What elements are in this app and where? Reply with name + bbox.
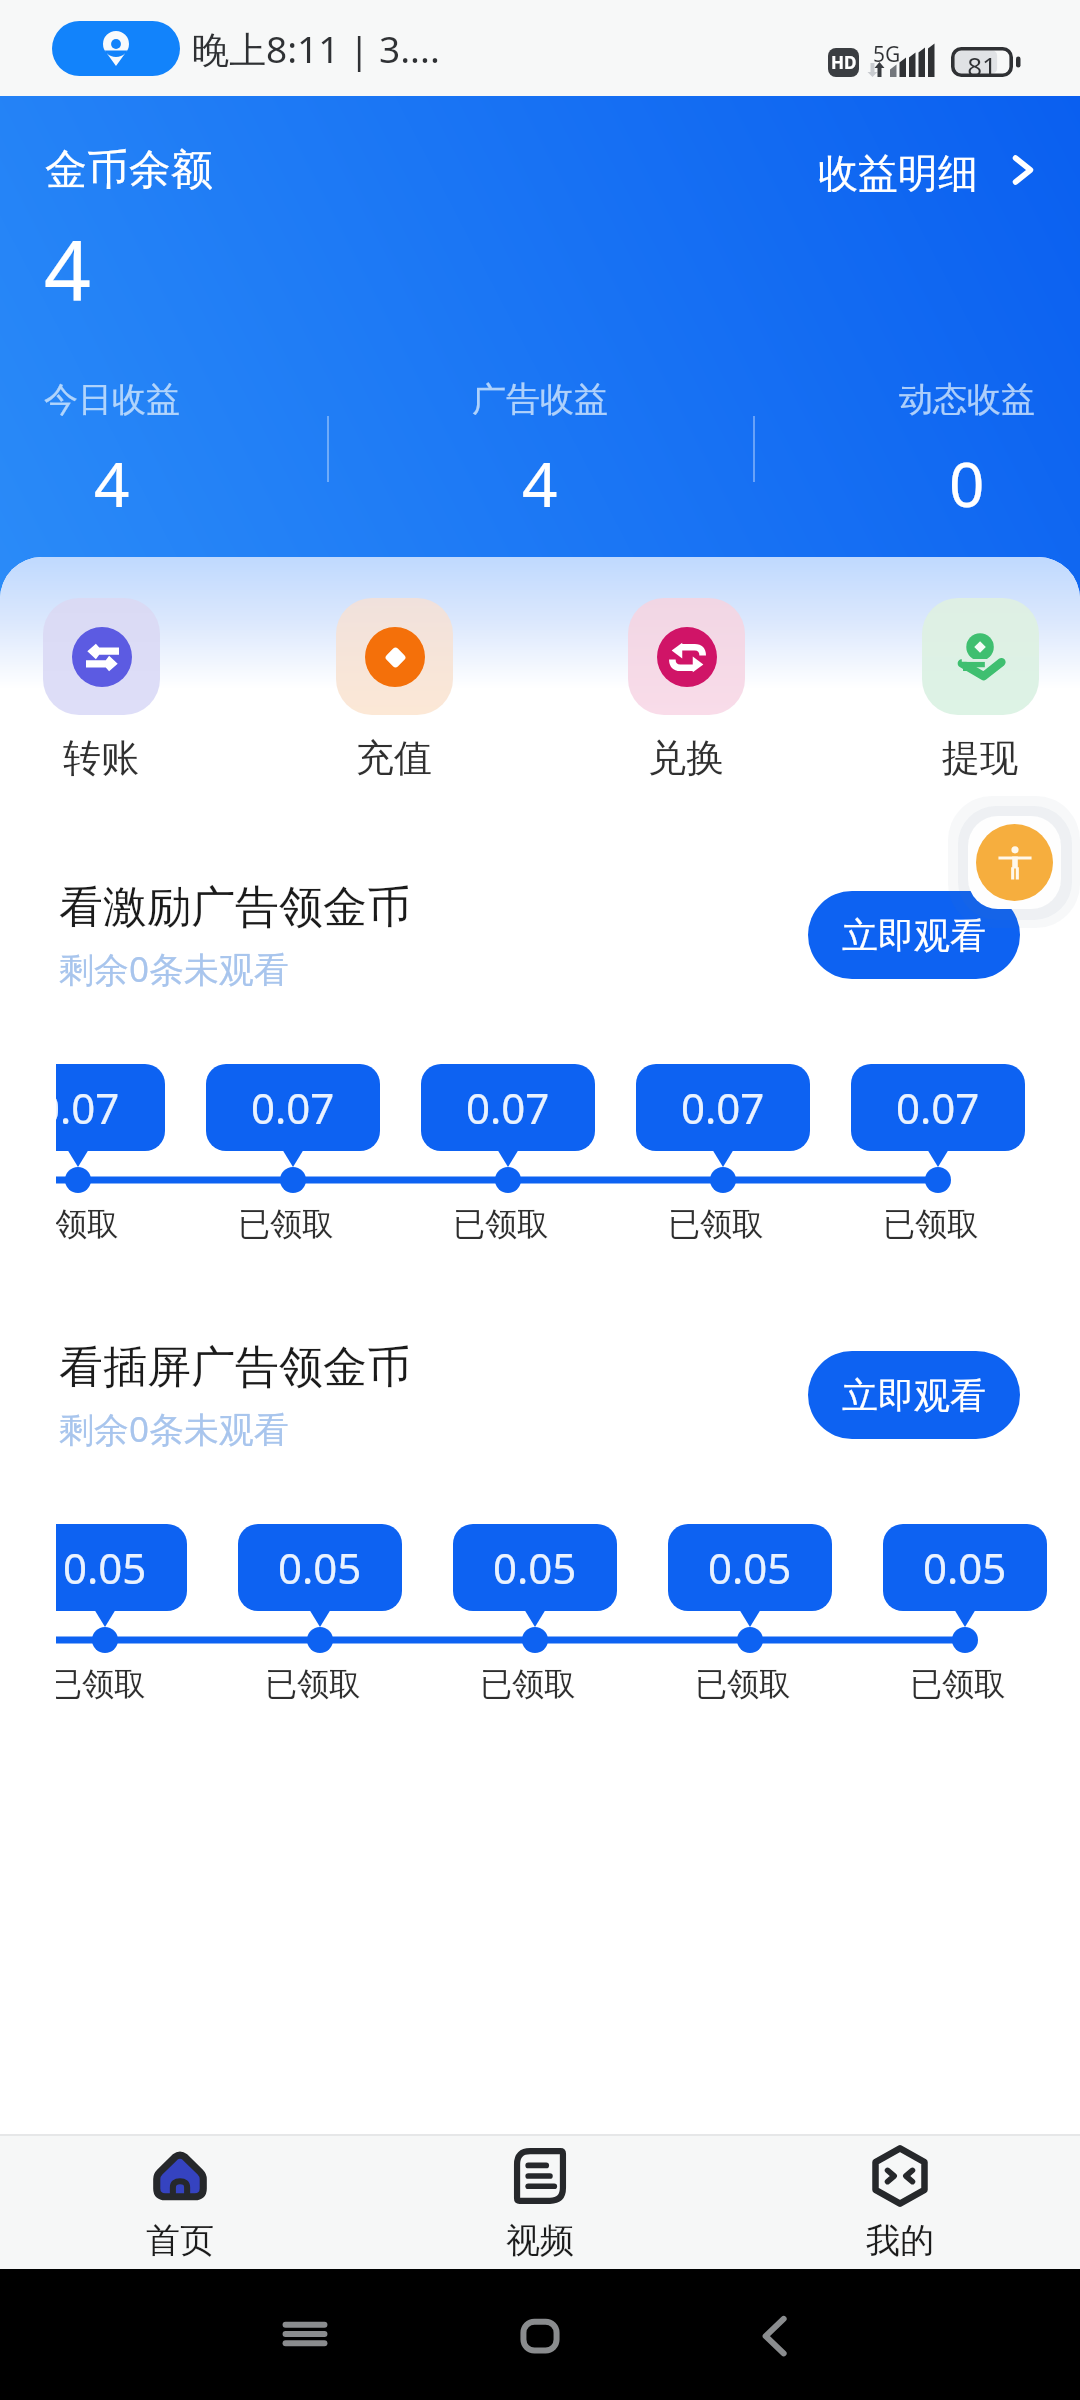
staticText: 4 [94, 441, 130, 525]
staticText: 0.07 [251, 1079, 335, 1136]
staticText: 0.07 [56, 1079, 120, 1136]
button[interactable]: 0.07 [851, 1064, 1025, 1151]
staticText: 已领取 [196, 1204, 376, 1244]
staticText: 0.05 [278, 1539, 362, 1596]
staticText: 4 [522, 441, 558, 525]
staticText: HD [831, 51, 857, 74]
staticText: 立即观看 [842, 913, 986, 958]
staticText: 动态收益 [899, 378, 1035, 421]
staticText: 看插屏广告领金币 [59, 1340, 411, 1395]
staticText: 金币余额 [45, 144, 213, 197]
staticText: 看激励广告领金币 [59, 880, 411, 935]
staticText: 0.05 [708, 1539, 792, 1596]
staticText: 81 [951, 48, 1013, 78]
staticText: 4 [44, 212, 91, 324]
button[interactable]: 立即观看 [808, 1351, 1020, 1439]
button[interactable]: 视频 [360, 2134, 720, 2269]
staticText: 已领取 [56, 1204, 161, 1244]
staticText: 已领取 [56, 1664, 188, 1704]
button[interactable]: 提现 [880, 598, 1080, 782]
button[interactable]: 0.07 [56, 1064, 165, 1151]
staticText: 0.07 [896, 1079, 980, 1136]
staticText: 已领取 [653, 1664, 833, 1704]
staticText: 已领取 [868, 1664, 1048, 1704]
staticText: 已领取 [438, 1664, 618, 1704]
button[interactable]: 首页 [0, 2134, 360, 2269]
staticText: 0.05 [63, 1539, 147, 1596]
button[interactable]: 立即观看 [808, 891, 1020, 979]
staticText: 已领取 [626, 1204, 806, 1244]
button[interactable]: Back [739, 2298, 811, 2370]
button[interactable]: 兑换 [586, 598, 786, 782]
staticText: 剩余0条未观看 [59, 1405, 290, 1453]
button[interactable]: 充值 [294, 598, 494, 782]
staticText: 今日收益 [44, 378, 180, 421]
staticText: 0.07 [681, 1079, 765, 1136]
button[interactable]: 0.07 [206, 1064, 380, 1151]
button[interactable]: 0.05 [56, 1524, 187, 1611]
button[interactable]: Location [52, 21, 180, 76]
staticText: 首页 [146, 2219, 214, 2262]
button[interactable]: Recents [269, 2298, 341, 2370]
button[interactable]: 0.07 [636, 1064, 810, 1151]
staticText: 5G [873, 40, 901, 69]
button[interactable]: Accessibility [968, 816, 1061, 909]
staticText: 已领取 [411, 1204, 591, 1244]
staticText: 剩余0条未观看 [59, 945, 290, 993]
button[interactable]: 0.05 [238, 1524, 402, 1611]
button[interactable]: 0.05 [453, 1524, 617, 1611]
staticText: 充值 [356, 734, 432, 782]
button[interactable]: 转账 [1, 598, 201, 782]
staticText: 晚上8:11 | 3.... [192, 23, 440, 74]
staticText: 广告收益 [472, 378, 608, 421]
button[interactable]: 收益明细 [812, 142, 1044, 198]
staticText: 转账 [63, 734, 139, 782]
button[interactable]: Home [504, 2298, 576, 2370]
staticText: 0.07 [466, 1079, 550, 1136]
staticText: 兑换 [648, 734, 724, 782]
staticText: 0.05 [923, 1539, 1007, 1596]
staticText: 提现 [942, 734, 1018, 782]
button[interactable]: 0.05 [668, 1524, 832, 1611]
staticText: 我的 [866, 2219, 934, 2262]
button[interactable]: 0.05 [883, 1524, 1047, 1611]
staticText: 已领取 [223, 1664, 403, 1704]
staticText: 0 [949, 441, 985, 525]
staticText: 收益明细 [818, 148, 978, 192]
staticText: 立即观看 [842, 1373, 986, 1418]
button[interactable]: 0.07 [421, 1064, 595, 1151]
staticText: 视频 [506, 2219, 574, 2262]
staticText: 已领取 [841, 1204, 1021, 1244]
button[interactable]: 我的 [720, 2134, 1080, 2269]
staticText: 0.05 [493, 1539, 577, 1596]
